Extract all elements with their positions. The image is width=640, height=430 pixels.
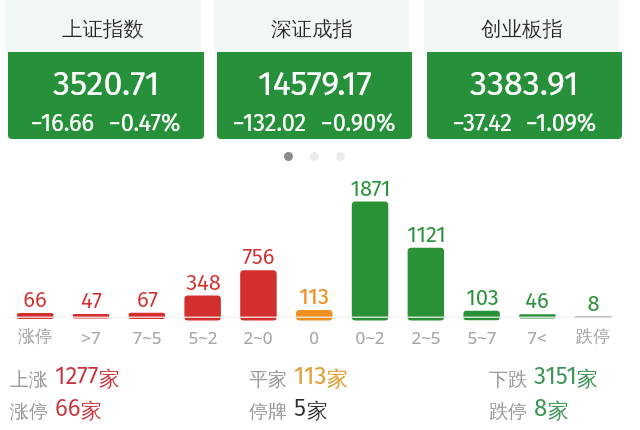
- staticText: 3151: [534, 362, 577, 391]
- staticText: 7~5: [132, 326, 162, 349]
- staticText: −0.47%: [109, 109, 181, 137]
- staticText: 103: [466, 284, 499, 310]
- staticText: 家: [577, 366, 598, 392]
- staticText: 涨停: [10, 400, 48, 424]
- button[interactable]: Go to page 2: [310, 152, 319, 161]
- staticText: 3383.91: [470, 63, 579, 104]
- staticText: 3520.71: [53, 63, 160, 104]
- staticText: 67: [137, 286, 158, 312]
- staticText: −1.09%: [526, 109, 597, 137]
- staticText: 家: [99, 366, 120, 392]
- staticText: 0~2: [355, 326, 385, 349]
- staticText: 66: [55, 394, 81, 423]
- staticText: 14579.17: [258, 63, 372, 104]
- staticText: 家: [327, 366, 348, 392]
- staticText: 2~5: [411, 326, 441, 349]
- button[interactable]: 上涨: [10, 363, 120, 424]
- staticText: 跌停: [576, 326, 610, 347]
- staticText: 46: [525, 287, 549, 313]
- staticText: 5~7: [467, 326, 497, 349]
- staticText: 平家: [249, 368, 287, 392]
- staticText: 2~0: [243, 326, 273, 349]
- button[interactable]: 下跌: [489, 363, 598, 424]
- staticText: 创业板指: [481, 16, 563, 42]
- staticText: 47: [81, 287, 102, 313]
- staticText: 上证指数: [62, 16, 144, 42]
- staticText: 5: [294, 394, 307, 423]
- staticText: 上涨: [10, 368, 48, 392]
- button[interactable]: Go to page 1: [284, 152, 293, 161]
- staticText: −0.90%: [321, 109, 396, 137]
- staticText: >7: [81, 326, 101, 349]
- staticText: 涨停: [18, 326, 52, 347]
- staticText: 下跌: [489, 368, 527, 392]
- button[interactable]: 创业板指: [427, 0, 622, 139]
- button[interactable]: 上证指数: [8, 0, 204, 139]
- staticText: 家: [307, 398, 328, 424]
- staticText: −132.02: [233, 109, 307, 137]
- staticText: 348: [186, 269, 221, 295]
- staticText: 756: [242, 243, 275, 269]
- staticText: 113: [299, 283, 329, 309]
- staticText: 113: [294, 362, 327, 391]
- staticText: 深证成指: [271, 16, 353, 42]
- staticText: 7<: [527, 326, 547, 349]
- staticText: 5~2: [188, 326, 218, 349]
- staticText: 1871: [350, 175, 391, 201]
- staticText: 1277: [55, 362, 99, 391]
- button[interactable]: 深证成指: [217, 0, 412, 139]
- button[interactable]: Go to page 3: [336, 152, 345, 161]
- staticText: 8: [534, 394, 548, 423]
- staticText: 66: [23, 286, 47, 312]
- staticText: 家: [81, 398, 102, 424]
- staticText: −16.66: [31, 109, 95, 137]
- staticText: 家: [548, 398, 569, 424]
- staticText: 跌停: [489, 400, 527, 424]
- staticText: 0: [309, 326, 319, 349]
- staticText: 8: [587, 290, 600, 316]
- button[interactable]: 平家: [249, 363, 348, 424]
- staticText: 停牌: [249, 400, 287, 424]
- staticText: −37.42: [453, 109, 512, 137]
- staticText: 1121: [407, 221, 446, 247]
